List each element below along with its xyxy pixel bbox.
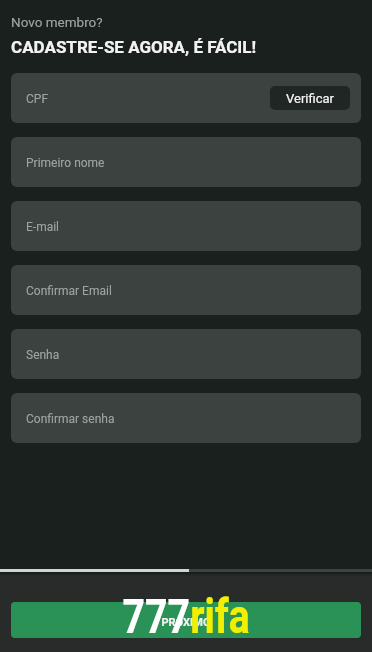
button[interactable]: Primeiro nome	[11, 137, 361, 187]
button[interactable]: Senha	[11, 329, 361, 379]
staticText: 777	[122, 588, 190, 644]
staticText: E-mail	[26, 220, 60, 234]
button[interactable]: CPF	[11, 73, 361, 123]
staticText: rifa	[190, 588, 250, 644]
staticText: Senha	[26, 348, 60, 362]
staticText: Verificar	[286, 91, 334, 106]
button[interactable]: E-mail	[11, 201, 361, 251]
staticText: CPF	[26, 92, 49, 106]
staticText: Confirmar Email	[26, 284, 112, 298]
button[interactable]: Confirmar senha	[11, 393, 361, 443]
staticText: PRÓXIMO	[161, 616, 211, 629]
staticText: Confirmar senha	[26, 412, 115, 426]
staticText: CADASTRE-SE AGORA, É FÁCIL!	[11, 37, 257, 57]
other: 777rifa	[122, 588, 250, 644]
staticText: Primeiro nome	[26, 156, 105, 170]
button[interactable]: Confirmar Email	[11, 265, 361, 315]
button[interactable]: PRÓXIMO	[11, 602, 361, 638]
button[interactable]: Verificar	[270, 86, 350, 110]
staticText: Novo membro?	[11, 14, 103, 30]
